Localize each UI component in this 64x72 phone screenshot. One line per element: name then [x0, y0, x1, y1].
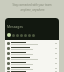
button[interactable]: [5, 41, 59, 46]
button[interactable]: [5, 61, 59, 66]
button[interactable]: [5, 51, 59, 56]
staticText: Messages: [7, 24, 23, 29]
button[interactable]: Contact: [32, 34, 35, 37]
button[interactable]: Contact: [28, 34, 31, 37]
button[interactable]: [5, 56, 59, 61]
button[interactable]: [5, 71, 59, 72]
staticText: Stay connected with your team: [12, 3, 52, 7]
button[interactable]: Add story: [7, 33, 11, 37]
button[interactable]: [5, 46, 59, 51]
button[interactable]: Contact: [12, 34, 15, 37]
button[interactable]: Contact: [24, 34, 27, 37]
button[interactable]: [5, 66, 59, 71]
staticText: anytime, anywhere: [20, 8, 45, 12]
button[interactable]: Contact: [20, 34, 23, 37]
button[interactable]: Contact: [16, 34, 19, 37]
